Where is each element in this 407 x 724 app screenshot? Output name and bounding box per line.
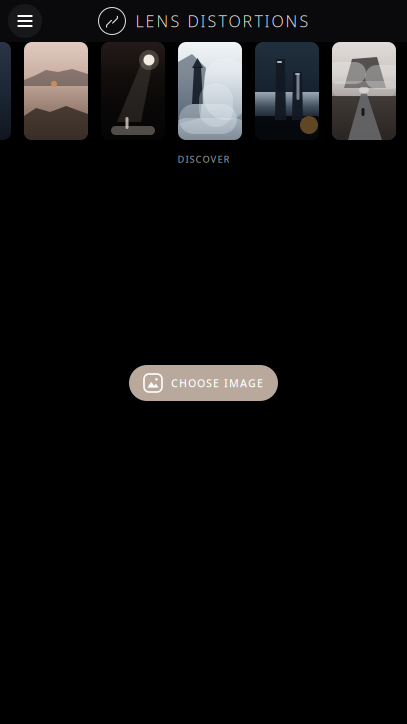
button[interactable]: D I S C O V E R: [165, 140, 241, 165]
button[interactable]: Preset: Road: [332, 42, 396, 140]
button[interactable]: Menu: [8, 4, 42, 38]
staticText: L E N S D I S T O R T I O N S: [135, 10, 308, 32]
button[interactable]: Preset: City: [255, 42, 319, 140]
staticText: C H O O S E I M A G E: [171, 376, 263, 390]
button[interactable]: Preset: Lighthouse: [178, 42, 242, 140]
staticText: D I S C O V E R: [177, 153, 229, 165]
button[interactable]: C H O O S E I M A G E: [129, 365, 278, 401]
button[interactable]: Preset: [0, 42, 11, 140]
button[interactable]: Preset: Desert: [24, 42, 88, 140]
button[interactable]: Preset: Cathedral: [101, 42, 165, 140]
